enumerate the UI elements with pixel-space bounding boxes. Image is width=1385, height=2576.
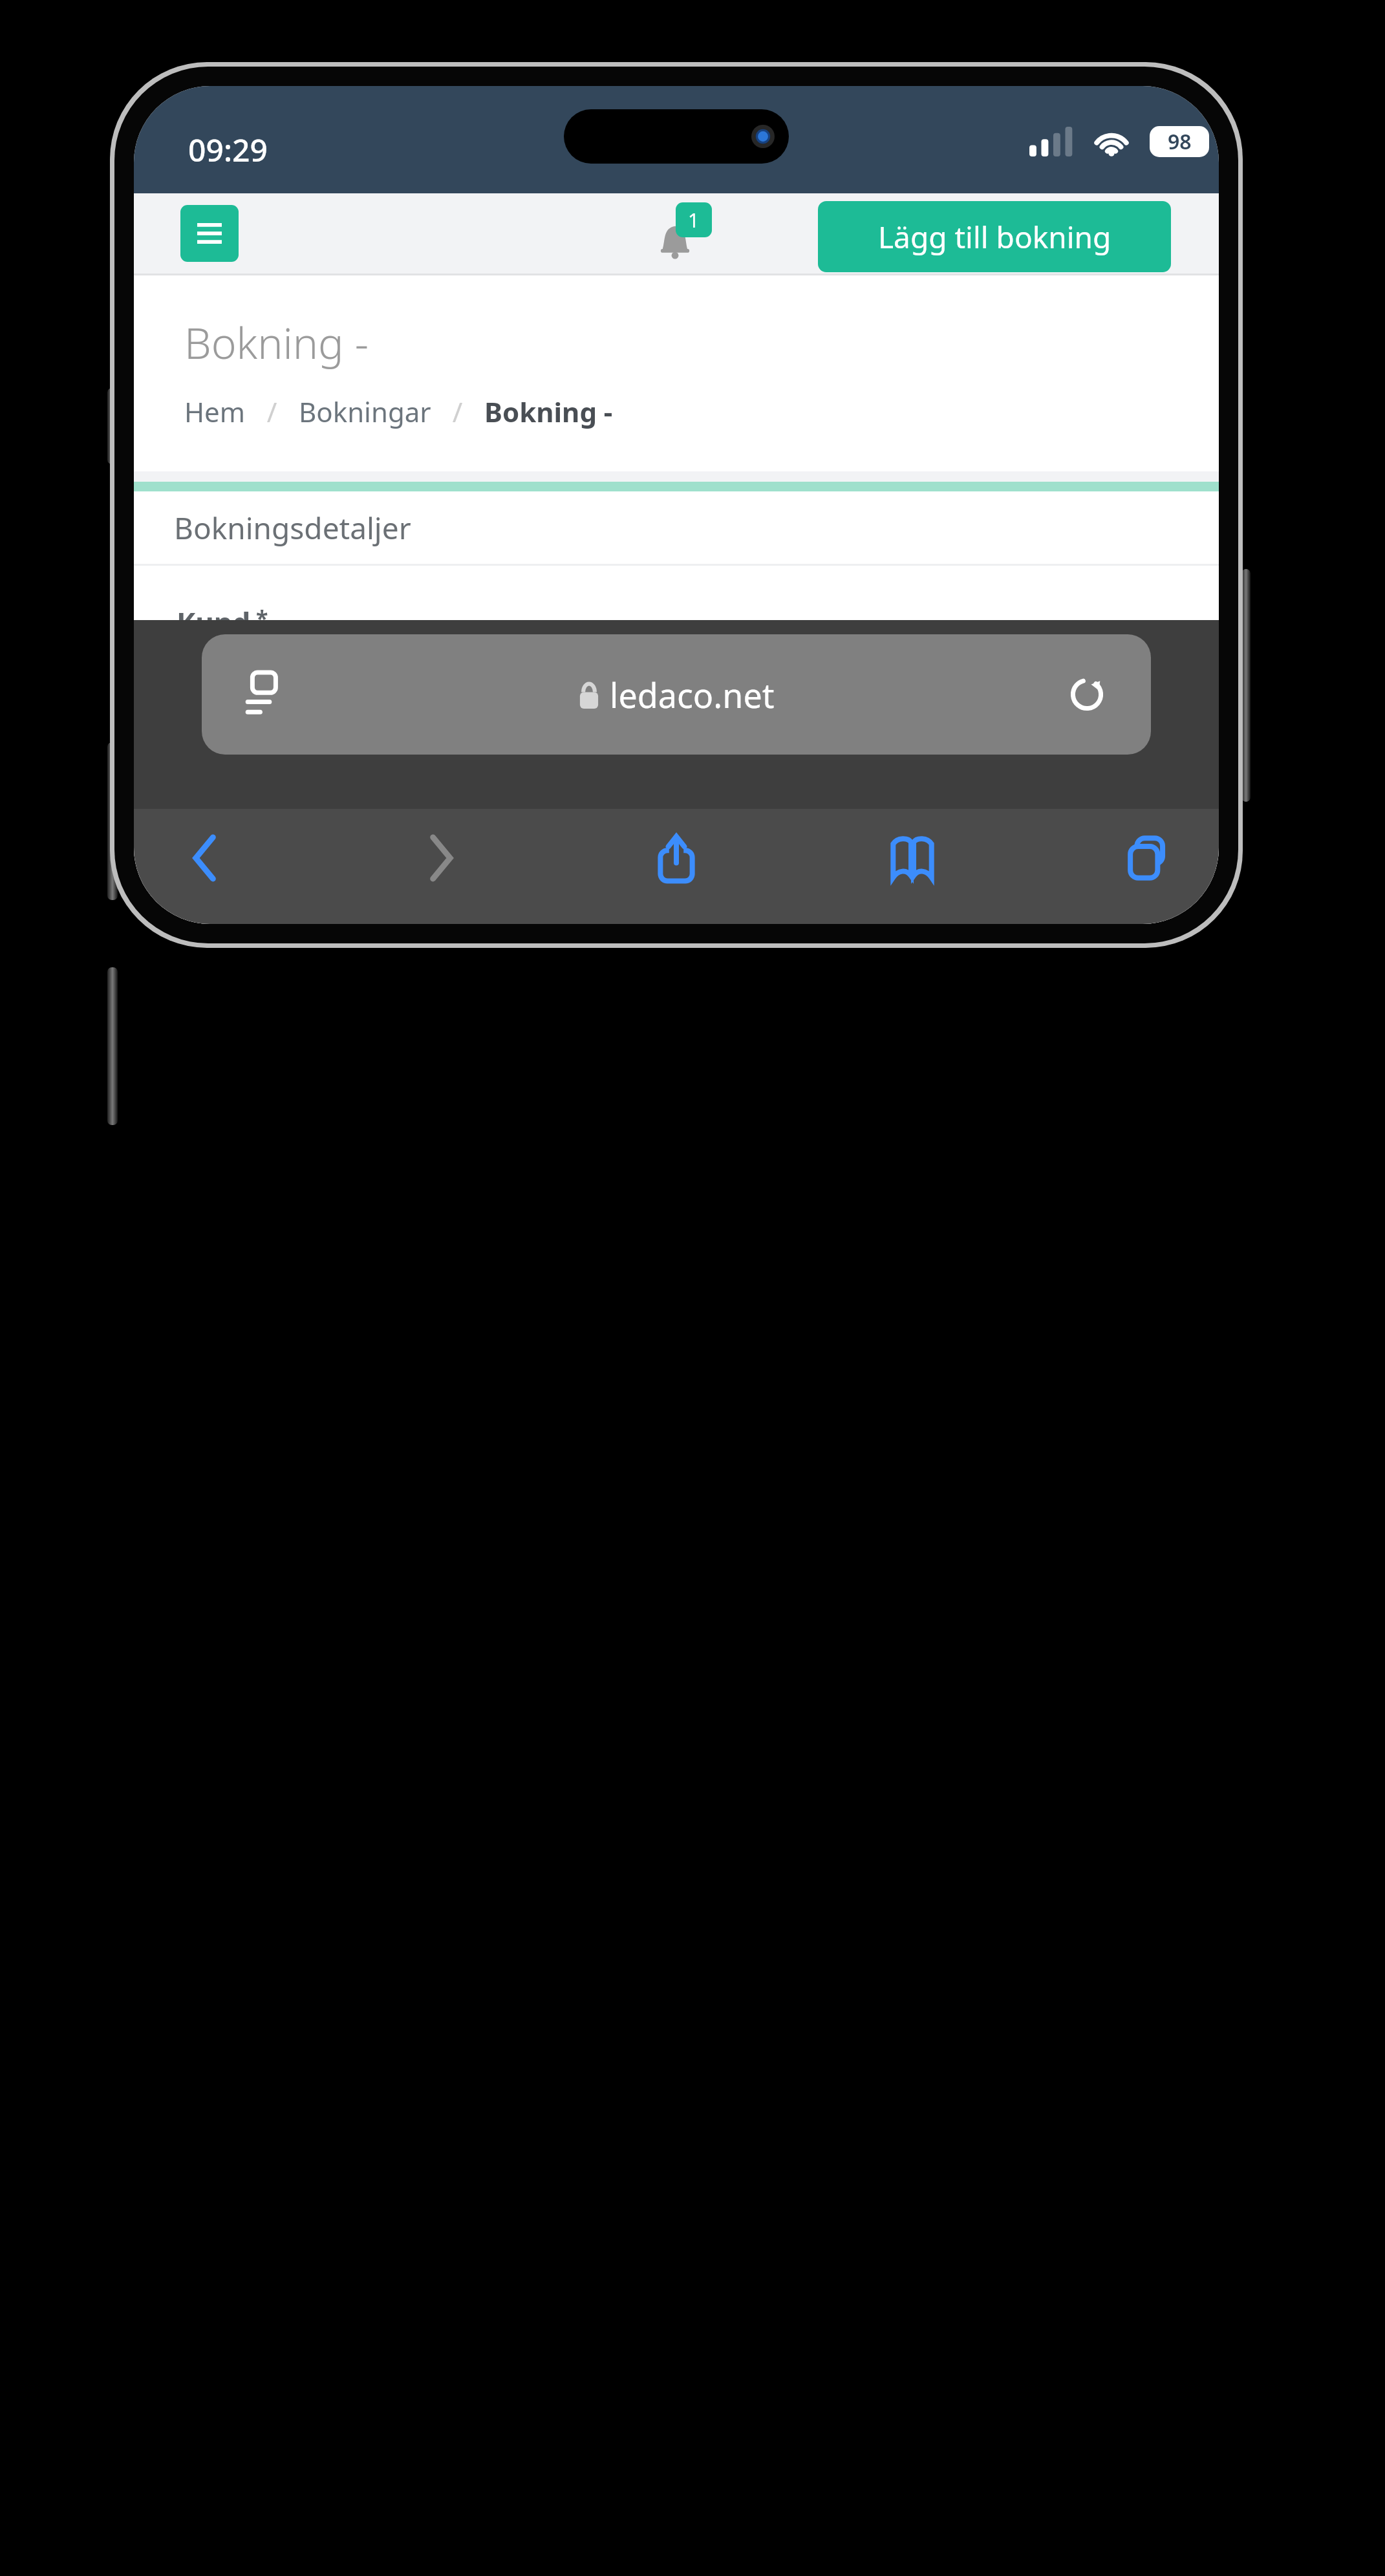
- button[interactable]: Notifications: [651, 202, 729, 264]
- staticText: Lägg till bokning: [878, 217, 1111, 257]
- staticText: 1: [688, 207, 700, 233]
- staticText: /: [431, 393, 484, 430]
- button[interactable]: Bookmarks: [875, 821, 950, 896]
- staticText: /: [246, 393, 299, 430]
- staticText: ledaco.net: [610, 672, 775, 718]
- staticText: Bokningsdetaljer: [174, 508, 411, 548]
- button[interactable]: Tabs: [1110, 821, 1185, 896]
- button[interactable]: Page settings: [202, 634, 1151, 755]
- button[interactable]: Share: [639, 821, 714, 896]
- other: Reload: [1069, 677, 1104, 712]
- staticText: Bokning -: [184, 313, 369, 371]
- staticText: Välj kund: [199, 667, 327, 708]
- button[interactable]: Välj kund: [177, 654, 903, 721]
- staticText: -: [199, 815, 208, 855]
- staticText: Er referens: [177, 749, 332, 788]
- button[interactable]: Forward: [403, 821, 478, 896]
- button[interactable]: Lägg till bokning: [818, 201, 1171, 272]
- staticText: 09:29: [188, 129, 268, 171]
- button[interactable]: Menu: [180, 205, 239, 262]
- button[interactable]: Back: [167, 821, 242, 896]
- other: Page settings: [247, 672, 286, 716]
- button[interactable]: Hem: [184, 393, 246, 430]
- staticText: Bokning -: [484, 393, 613, 430]
- staticText: *: [256, 603, 268, 633]
- button[interactable]: Bokningar: [299, 393, 431, 430]
- staticText: Kund: [177, 603, 251, 642]
- button[interactable]: -: [177, 801, 996, 868]
- staticText: 98: [1168, 127, 1192, 156]
- staticText: Prislista: [177, 920, 291, 924]
